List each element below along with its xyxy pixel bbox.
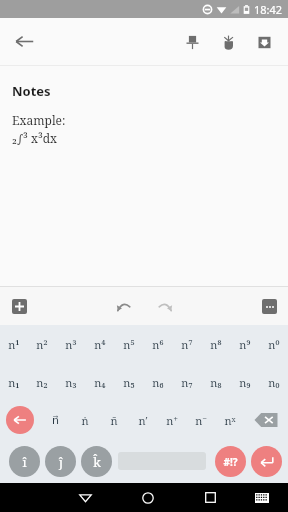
button[interactable]: Recent apps	[182, 483, 239, 512]
button[interactable]: n¹	[0, 325, 28, 363]
staticText: n⁹	[239, 337, 251, 352]
button[interactable]: Backspace	[244, 401, 288, 439]
staticText: n⃗	[52, 414, 59, 427]
staticText: n¹	[8, 337, 20, 352]
button[interactable]: #!?	[212, 443, 248, 479]
staticText: n⁸	[210, 337, 222, 352]
button[interactable]: n′	[128, 401, 157, 439]
staticText: î	[22, 453, 27, 471]
staticText: n₀	[268, 375, 280, 390]
staticText: Notes	[12, 82, 51, 100]
staticText: n³	[65, 337, 77, 352]
staticText: n⁰	[268, 337, 280, 352]
button[interactable]: n⁹	[230, 325, 259, 363]
staticText: 18:42	[254, 2, 283, 17]
button[interactable]: n⁷	[172, 325, 201, 363]
staticText: ĵ	[59, 453, 63, 471]
staticText: n⁵	[123, 337, 135, 352]
button[interactable]: Switch keyboard	[239, 483, 284, 512]
button[interactable]: n₁	[0, 363, 28, 401]
button[interactable]: Redo	[150, 291, 180, 321]
button[interactable]: Insert	[246, 24, 282, 60]
button[interactable]: n⁸	[201, 325, 230, 363]
staticText: n⁶	[152, 337, 164, 352]
button[interactable]: n₀	[259, 363, 288, 401]
button[interactable]: n₂	[28, 363, 56, 401]
button[interactable]: n⁶	[143, 325, 172, 363]
staticText: ṅ	[81, 413, 89, 428]
staticText: n′	[138, 413, 148, 428]
button[interactable]: n⁰	[259, 325, 288, 363]
button[interactable]: n̄	[99, 401, 128, 439]
button[interactable]: k̂	[78, 443, 114, 479]
button[interactable]: n⁻	[186, 401, 215, 439]
staticText: n⁴	[94, 337, 106, 352]
staticText: Example:	[12, 112, 66, 128]
button[interactable]: Back	[57, 483, 114, 512]
staticText: n⁻	[195, 413, 207, 428]
button[interactable]: Undo	[108, 291, 138, 321]
button[interactable]: n⃗	[40, 401, 70, 439]
button[interactable]: n⁺	[157, 401, 186, 439]
button[interactable]: Back	[0, 18, 48, 65]
staticText: n₄	[94, 375, 106, 390]
button[interactable]: Previous	[0, 401, 40, 439]
button[interactable]: n⁵	[114, 325, 143, 363]
button[interactable]: n₉	[230, 363, 259, 401]
button[interactable]: n₄	[85, 363, 114, 401]
staticText: n⁷	[181, 337, 193, 352]
staticText: n₂	[36, 375, 48, 390]
staticText: n⁺	[166, 413, 178, 428]
button[interactable]: n₇	[172, 363, 201, 401]
staticText: #!?	[223, 455, 238, 469]
button[interactable]: n₆	[143, 363, 172, 401]
staticText: n₁	[8, 375, 20, 390]
staticText: n²	[36, 337, 48, 352]
staticText: n₈	[210, 375, 222, 390]
staticText: n₃	[65, 375, 77, 390]
button[interactable]: More options	[256, 293, 282, 319]
button[interactable]: Home	[114, 483, 182, 512]
button[interactable]: ĵ	[42, 443, 78, 479]
staticText: nˣ	[224, 413, 236, 428]
staticText: k̂	[93, 453, 101, 471]
button[interactable]: n⁴	[85, 325, 114, 363]
button[interactable]: Pin	[174, 24, 210, 60]
staticText: ₂∫³ x³dx	[12, 130, 58, 146]
staticText: n₅	[123, 375, 135, 390]
button[interactable]: Gestures	[210, 24, 246, 60]
staticText: n̄	[110, 413, 118, 428]
staticText: n₉	[239, 375, 251, 390]
button[interactable]: n₃	[56, 363, 85, 401]
staticText: n₇	[181, 375, 193, 390]
button[interactable]: n²	[28, 325, 56, 363]
button[interactable]: Add	[6, 293, 32, 319]
button[interactable]: n³	[56, 325, 85, 363]
button[interactable]: î	[6, 443, 42, 479]
staticText: n₆	[152, 375, 164, 390]
button[interactable]: nˣ	[215, 401, 244, 439]
button[interactable]: Enter	[248, 443, 284, 479]
button[interactable]: n₈	[201, 363, 230, 401]
button[interactable]: ṅ	[70, 401, 99, 439]
button[interactable]: n₅	[114, 363, 143, 401]
